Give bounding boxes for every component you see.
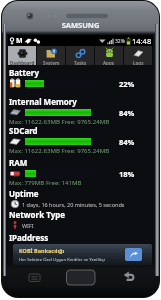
staticText: 84% — [119, 137, 135, 147]
button[interactable]: KOBİ Bankacılığı — [13, 244, 152, 265]
button[interactable]: Internal Memory — [8, 96, 153, 124]
staticText: Her Sektöre Özel Uygun Krediler ve Yenil… — [19, 257, 105, 263]
button[interactable]: IPaddress — [9, 232, 49, 243]
button[interactable]: Tasks — [66, 46, 94, 65]
button[interactable]: Battery — [8, 67, 153, 89]
button[interactable]: Apps — [95, 46, 123, 65]
staticText: Tasks — [74, 60, 87, 65]
staticText: WIFI — [22, 222, 34, 229]
staticText: Network Type — [9, 209, 66, 220]
staticText: System — [43, 60, 60, 65]
staticText: Internal Memory — [9, 96, 77, 107]
button[interactable]: Dashboard — [8, 46, 36, 65]
staticText: RAM — [9, 157, 28, 168]
button[interactable]: RAM — [8, 157, 153, 185]
button[interactable]: Uptime — [8, 188, 153, 210]
staticText: 22% — [119, 79, 135, 89]
button[interactable]: System — [37, 46, 65, 65]
staticText: SDCard — [9, 125, 38, 136]
staticText: Battery — [9, 67, 39, 78]
button[interactable]: Open advertisement — [125, 248, 142, 261]
staticText: Max: 779MB Free: 141MB — [9, 178, 82, 186]
button[interactable]: SDCard — [8, 125, 153, 153]
staticText: IPaddress — [9, 232, 49, 243]
staticText: M — [16, 36, 23, 46]
staticText: Apps — [103, 60, 115, 65]
button[interactable]: Network Type — [8, 209, 153, 231]
staticText: Dashboard — [10, 60, 35, 65]
staticText: Logs — [133, 60, 144, 65]
staticText: KOBİ Bankacılığı — [19, 247, 65, 254]
staticText: 18% — [119, 169, 135, 179]
staticText: 1 days, 16 hours, 20 minutes, 5 seconds — [22, 201, 125, 208]
staticText: Max: 11622.63MB Free: 9765.24MB — [9, 117, 110, 125]
staticText: 14:48 — [132, 36, 152, 46]
staticText: SAMSUNG — [2, 20, 159, 30]
staticText: 84% — [119, 108, 135, 118]
staticText: 32% — [115, 38, 125, 45]
staticText: Max: 11622.63MB Free: 9765.24MB — [9, 146, 110, 154]
button[interactable]: Logs — [124, 46, 152, 65]
staticText: Uptime — [9, 188, 39, 199]
